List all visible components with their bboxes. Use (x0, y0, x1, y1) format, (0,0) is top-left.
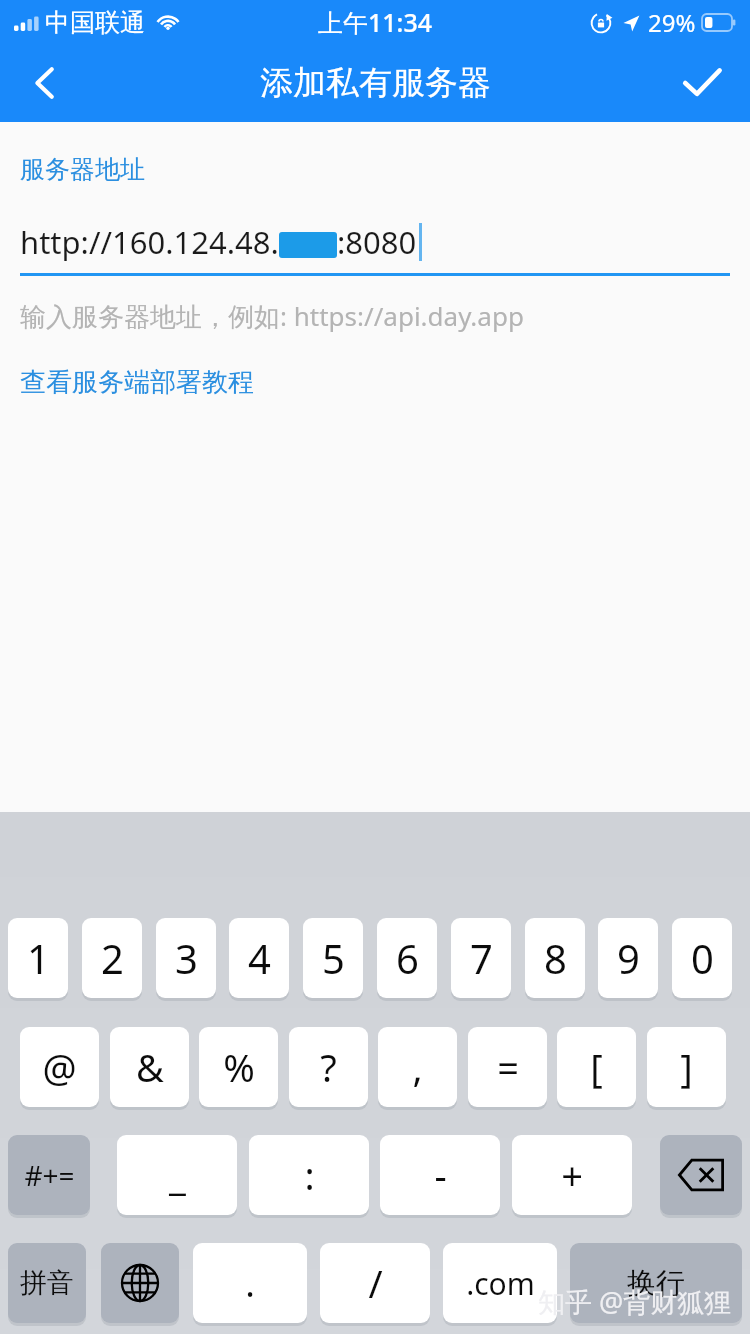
staticText: 3 (175, 931, 198, 985)
staticText: 换行 (627, 1265, 685, 1302)
button[interactable]: #+= (8, 1135, 90, 1215)
button[interactable]: 拼音 (8, 1243, 86, 1323)
staticText: 输入服务器地址，例如: https://api.day.app (20, 298, 524, 334)
staticText: @ (42, 1041, 77, 1093)
button[interactable]: = (468, 1027, 547, 1107)
staticText: 4 (248, 931, 271, 985)
staticText: / (368, 1257, 383, 1309)
staticText: 查看服务端部署教程 (20, 366, 254, 399)
button[interactable]: _ (117, 1135, 237, 1215)
staticText: :8080 (337, 221, 417, 263)
staticText: + (561, 1149, 583, 1201)
button[interactable]: - (380, 1135, 500, 1215)
staticText: = (497, 1041, 519, 1093)
staticText: 拼音 (20, 1266, 74, 1300)
button[interactable]: [ (557, 1027, 636, 1107)
staticText: 29% (648, 6, 696, 39)
staticText: 上午11:34 (318, 5, 433, 39)
button[interactable]: 7 (451, 918, 511, 998)
button[interactable]: 切换输入法 (101, 1243, 179, 1323)
button[interactable]: 5 (303, 918, 363, 998)
button[interactable]: 9 (598, 918, 658, 998)
staticText: 6 (396, 931, 419, 985)
button[interactable]: 4 (229, 918, 289, 998)
button[interactable]: : (249, 1135, 369, 1215)
staticText: http://160.124.48. (20, 221, 279, 263)
staticText: 服务器地址 (20, 154, 145, 185)
staticText: - (434, 1149, 447, 1201)
button[interactable]: , (378, 1027, 457, 1107)
button[interactable]: 返回 (8, 45, 84, 121)
staticText: [ (590, 1041, 603, 1093)
button[interactable]: 8 (525, 918, 585, 998)
button[interactable]: 换行 (570, 1243, 742, 1323)
staticText: % (223, 1041, 255, 1093)
button[interactable]: 3 (156, 918, 216, 998)
staticText: 添加私有服务器 (260, 62, 491, 104)
button[interactable]: 确认 (664, 45, 740, 121)
button[interactable]: 查看服务端部署教程 (20, 366, 254, 399)
button[interactable]: 1 (8, 918, 68, 998)
button[interactable]: ] (647, 1027, 726, 1107)
staticText: #+= (24, 1156, 75, 1194)
button[interactable]: 0 (672, 918, 732, 998)
button[interactable]: + (512, 1135, 632, 1215)
button[interactable]: & (110, 1027, 189, 1107)
staticText: .com (466, 1263, 535, 1304)
staticText: _ (169, 1149, 186, 1201)
button[interactable]: 退格 (660, 1135, 742, 1215)
staticText: : (304, 1149, 315, 1201)
staticText: ? (320, 1041, 337, 1093)
button[interactable]: ? (289, 1027, 368, 1107)
button[interactable]: . (193, 1243, 307, 1323)
staticText: 9 (617, 931, 640, 985)
button[interactable]: 6 (377, 918, 437, 998)
staticText: , (412, 1041, 423, 1093)
button[interactable]: / (320, 1243, 430, 1323)
button[interactable]: @ (20, 1027, 99, 1107)
staticText: 中国联通 (45, 7, 145, 38)
staticText: . (245, 1259, 255, 1308)
staticText: 0 (691, 931, 714, 985)
staticText: 5 (322, 931, 345, 985)
staticText: ] (680, 1041, 693, 1093)
staticText: 知乎 @背财狐狸 (538, 1283, 732, 1320)
staticText: 2 (101, 931, 124, 985)
button[interactable]: % (199, 1027, 278, 1107)
button[interactable]: .com (443, 1243, 557, 1323)
button[interactable]: 2 (82, 918, 142, 998)
staticText: & (136, 1041, 164, 1093)
staticText: 8 (544, 931, 567, 985)
staticText: 7 (470, 931, 493, 985)
staticText: 1 (27, 931, 50, 985)
